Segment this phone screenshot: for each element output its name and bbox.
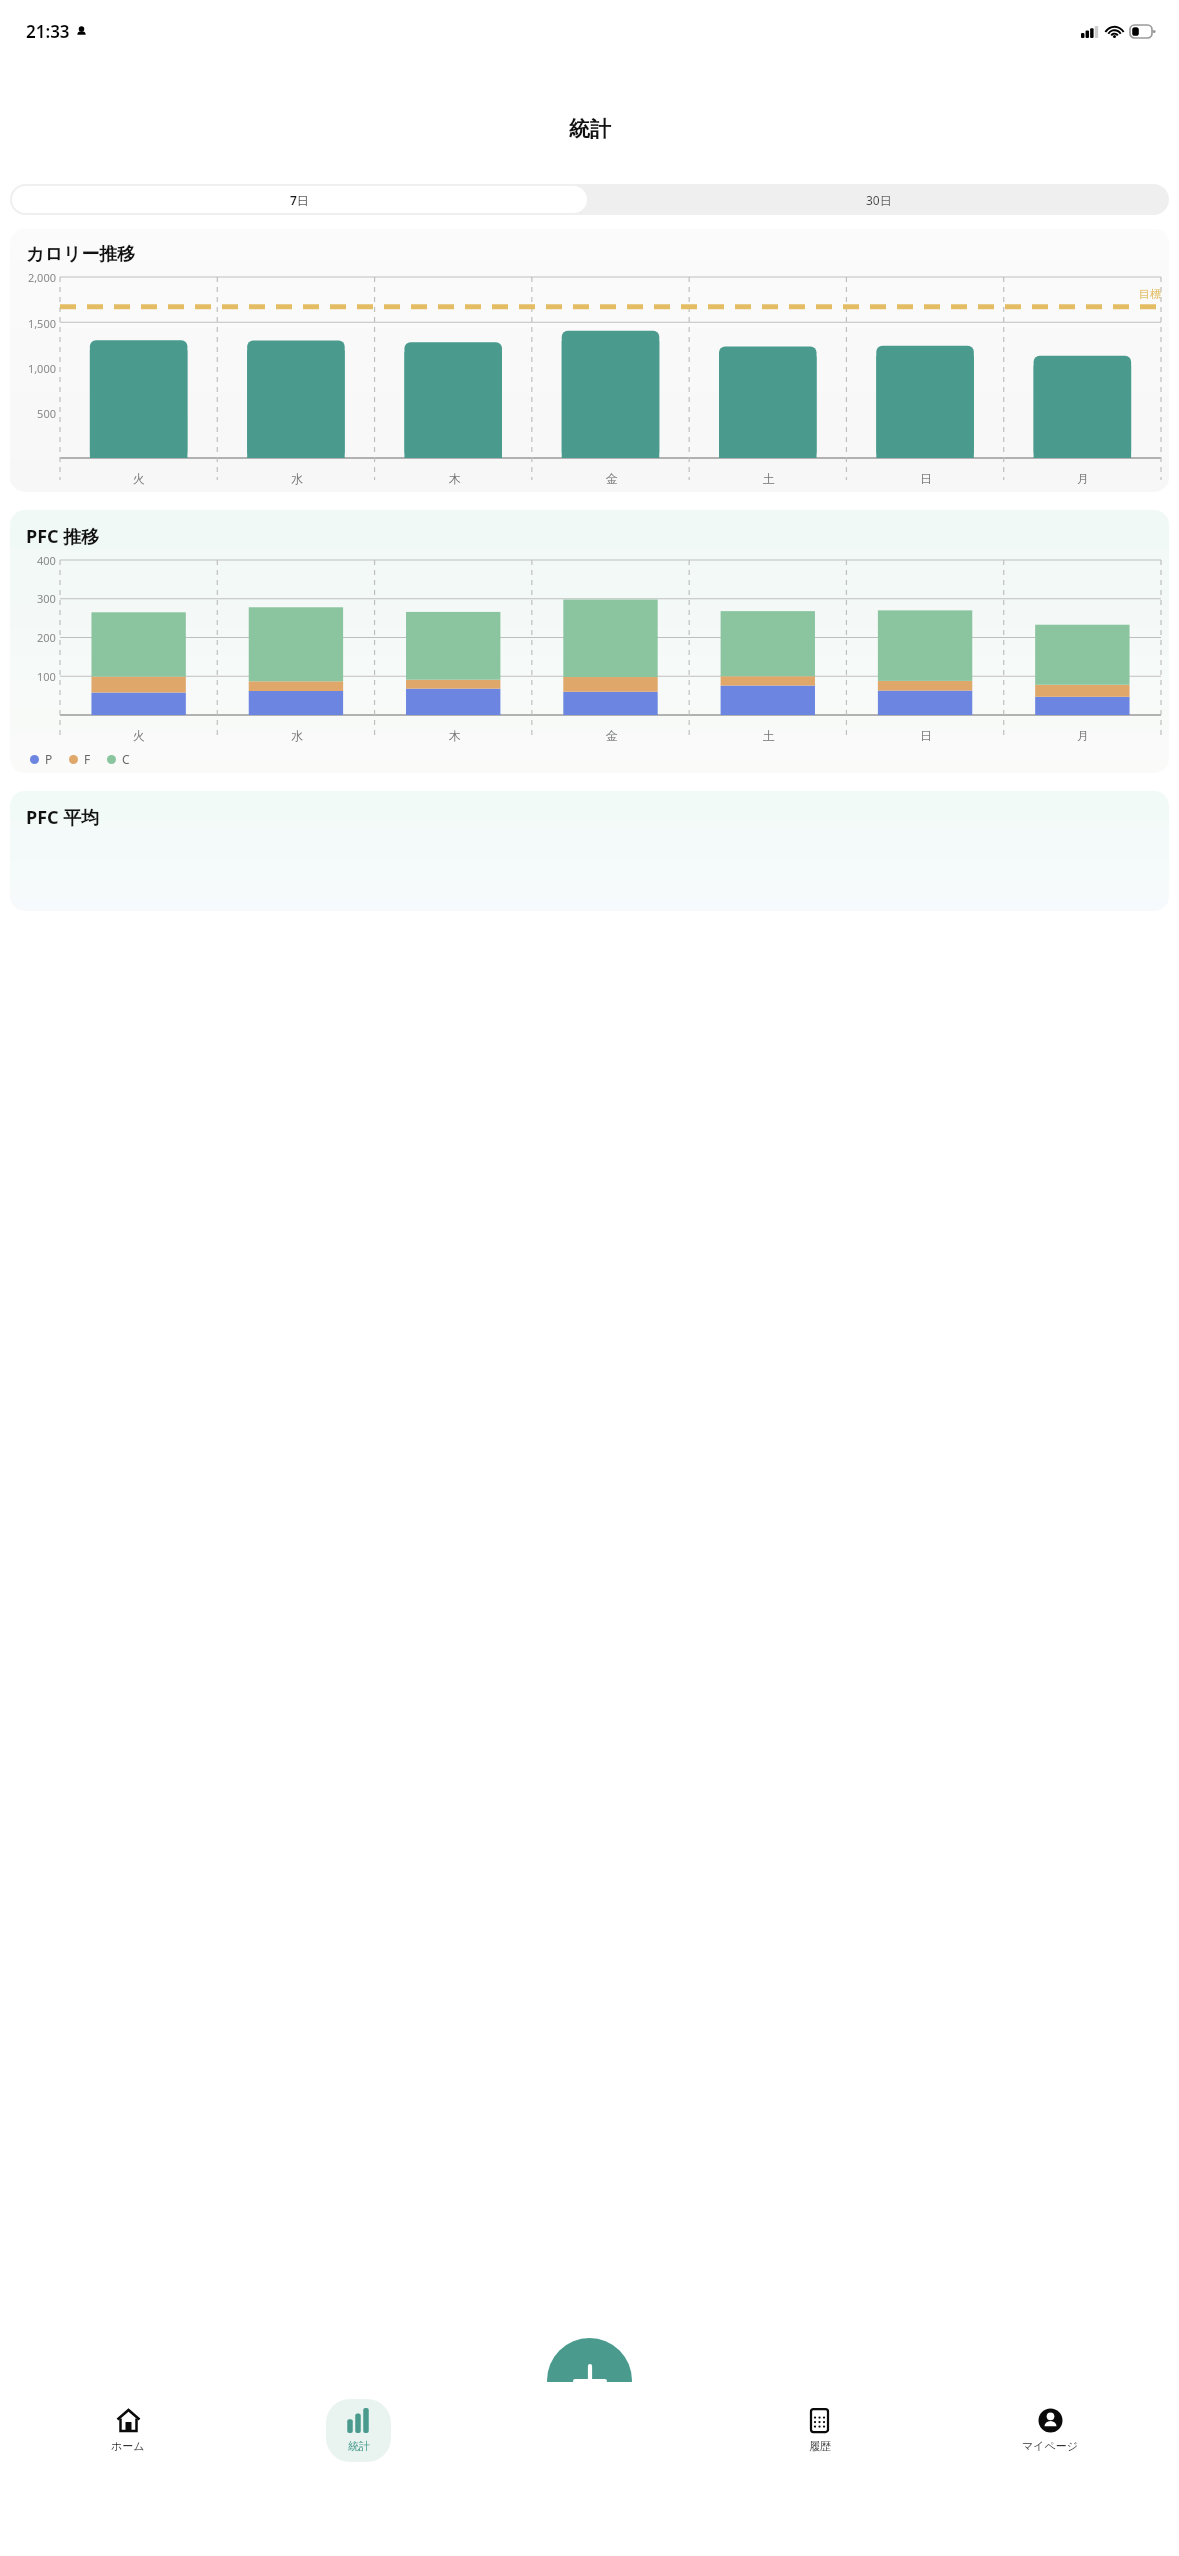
button[interactable]: PFC 推移 [10,510,1169,773]
staticText: 金 [606,728,618,743]
staticText: 木 [449,728,461,743]
staticText: 水 [291,728,303,743]
staticText: 土 [763,728,775,743]
staticText: 500 [37,406,56,421]
staticText: 7日 [290,192,309,208]
button[interactable]: カロリー推移 [10,229,1169,492]
staticText: 木 [449,471,461,486]
staticText: 統計 [348,2439,370,2453]
staticText: 月 [1077,728,1089,743]
button[interactable]: マイページ [1002,2399,1099,2462]
staticText: 金 [606,471,618,486]
staticText: 200 [37,630,56,645]
button[interactable]: ホーム [91,2399,165,2462]
button[interactable]: 30日 [589,184,1169,215]
staticText: カロリー推移 [26,243,136,266]
staticText: 土 [763,471,775,486]
staticText: P [45,751,53,767]
staticText: ホーム [111,2439,145,2453]
staticText: 1,500 [27,316,56,331]
button[interactable]: PFC 平均 [10,791,1169,911]
button[interactable]: 記録を追加 [547,2338,632,2423]
staticText: 2,000 [27,270,56,285]
staticText: 火 [133,728,145,743]
staticText: 日 [920,471,932,486]
staticText: PFC 平均 [26,805,100,830]
staticText: 100 [37,669,56,684]
staticText: C [122,751,130,767]
staticText: マイページ [1022,2439,1079,2453]
button[interactable]: 統計 [326,2399,391,2462]
staticText: 1,000 [27,361,56,376]
staticText: 履歴 [809,2439,831,2453]
staticText: PFC 推移 [26,524,100,549]
staticText: 300 [37,591,56,606]
staticText: 月 [1077,471,1089,486]
staticText: 21:33 [26,20,70,43]
staticText: 30日 [866,192,892,208]
staticText: 統計 [569,116,611,142]
staticText: 目標 [1139,287,1161,301]
staticText: 水 [291,471,303,486]
staticText: 火 [133,471,145,486]
button[interactable]: 履歴 [787,2399,852,2462]
staticText: 400 [37,553,56,568]
button[interactable]: 7日 [12,186,587,213]
staticText: F [84,751,91,767]
staticText: 日 [920,728,932,743]
